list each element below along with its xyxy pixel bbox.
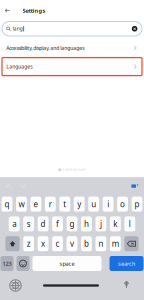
button[interactable]: c (52, 236, 63, 251)
button[interactable]: b (81, 236, 92, 251)
button[interactable]: search (109, 256, 143, 271)
button[interactable]: y (74, 197, 85, 212)
staticText: z (27, 238, 31, 249)
button[interactable]: t (59, 197, 70, 212)
staticText: m (112, 238, 119, 249)
button[interactable]: Shift (5, 236, 20, 251)
button[interactable]: p (132, 197, 142, 212)
button[interactable]: u (88, 197, 99, 212)
button[interactable]: k (110, 216, 121, 231)
button[interactable]: z (23, 236, 34, 251)
staticText: a (12, 218, 16, 229)
button[interactable]: m (110, 236, 121, 251)
staticText: j (100, 218, 102, 229)
button[interactable]: j (95, 216, 106, 231)
button[interactable]: n (95, 236, 106, 251)
button[interactable]: f (52, 216, 63, 231)
staticText: lang (13, 25, 23, 32)
button[interactable]: Languages (2, 58, 142, 76)
staticText: p (134, 199, 139, 210)
staticText: c (55, 238, 59, 249)
staticText: t (63, 199, 66, 210)
staticText: Accessibility, display, and languages (6, 44, 84, 51)
staticText: q (4, 199, 9, 210)
button[interactable]: i (103, 197, 113, 212)
staticText: o (120, 199, 125, 210)
button[interactable]: Hide keyboard (129, 180, 141, 193)
staticText: x (41, 238, 45, 249)
button[interactable]: s (23, 216, 34, 231)
button[interactable]: Back (1, 4, 14, 17)
button[interactable]: g (67, 216, 77, 231)
button[interactable]: Accessibility, display, and languages (2, 39, 142, 57)
button[interactable]: h (81, 216, 92, 231)
button[interactable]: l (124, 216, 135, 231)
button[interactable]: r (45, 197, 56, 212)
button[interactable]: Switch keyboard language (7, 277, 24, 293)
staticText: f (56, 218, 59, 229)
staticText: space (59, 260, 74, 267)
staticText: r (49, 199, 52, 210)
button[interactable]: Clear search (132, 26, 137, 31)
button[interactable]: Numbers (0, 256, 13, 271)
button[interactable]: space (32, 256, 101, 271)
button[interactable]: Delete (124, 236, 139, 251)
button[interactable]: x (38, 236, 48, 251)
staticText: g (69, 218, 74, 229)
staticText: search (118, 260, 135, 267)
staticText: y (77, 199, 81, 210)
staticText: i (107, 199, 109, 210)
staticText: l (129, 218, 131, 229)
button[interactable]: Emoji (16, 256, 29, 271)
staticText: Settings (22, 7, 45, 14)
staticText: 123 (2, 260, 11, 267)
staticText: u (91, 199, 96, 210)
staticText: k (113, 218, 117, 229)
staticText: n (98, 238, 103, 249)
staticText: w (18, 199, 24, 210)
button[interactable]: e (30, 197, 41, 212)
button[interactable]: o (117, 197, 128, 212)
button[interactable]: Dictate (118, 277, 135, 293)
staticText: twitter.com (63, 166, 86, 172)
staticText: e (33, 199, 38, 210)
staticText: s (27, 218, 31, 229)
button[interactable]: a (9, 216, 20, 231)
staticText: Languages (6, 63, 32, 70)
button[interactable]: q (2, 197, 12, 212)
staticText: v (70, 238, 74, 249)
staticText: d (41, 218, 46, 229)
staticText: b (84, 238, 89, 249)
staticText: h (84, 218, 89, 229)
button[interactable]: w (16, 197, 27, 212)
button[interactable]: v (67, 236, 77, 251)
button[interactable]: d (38, 216, 48, 231)
